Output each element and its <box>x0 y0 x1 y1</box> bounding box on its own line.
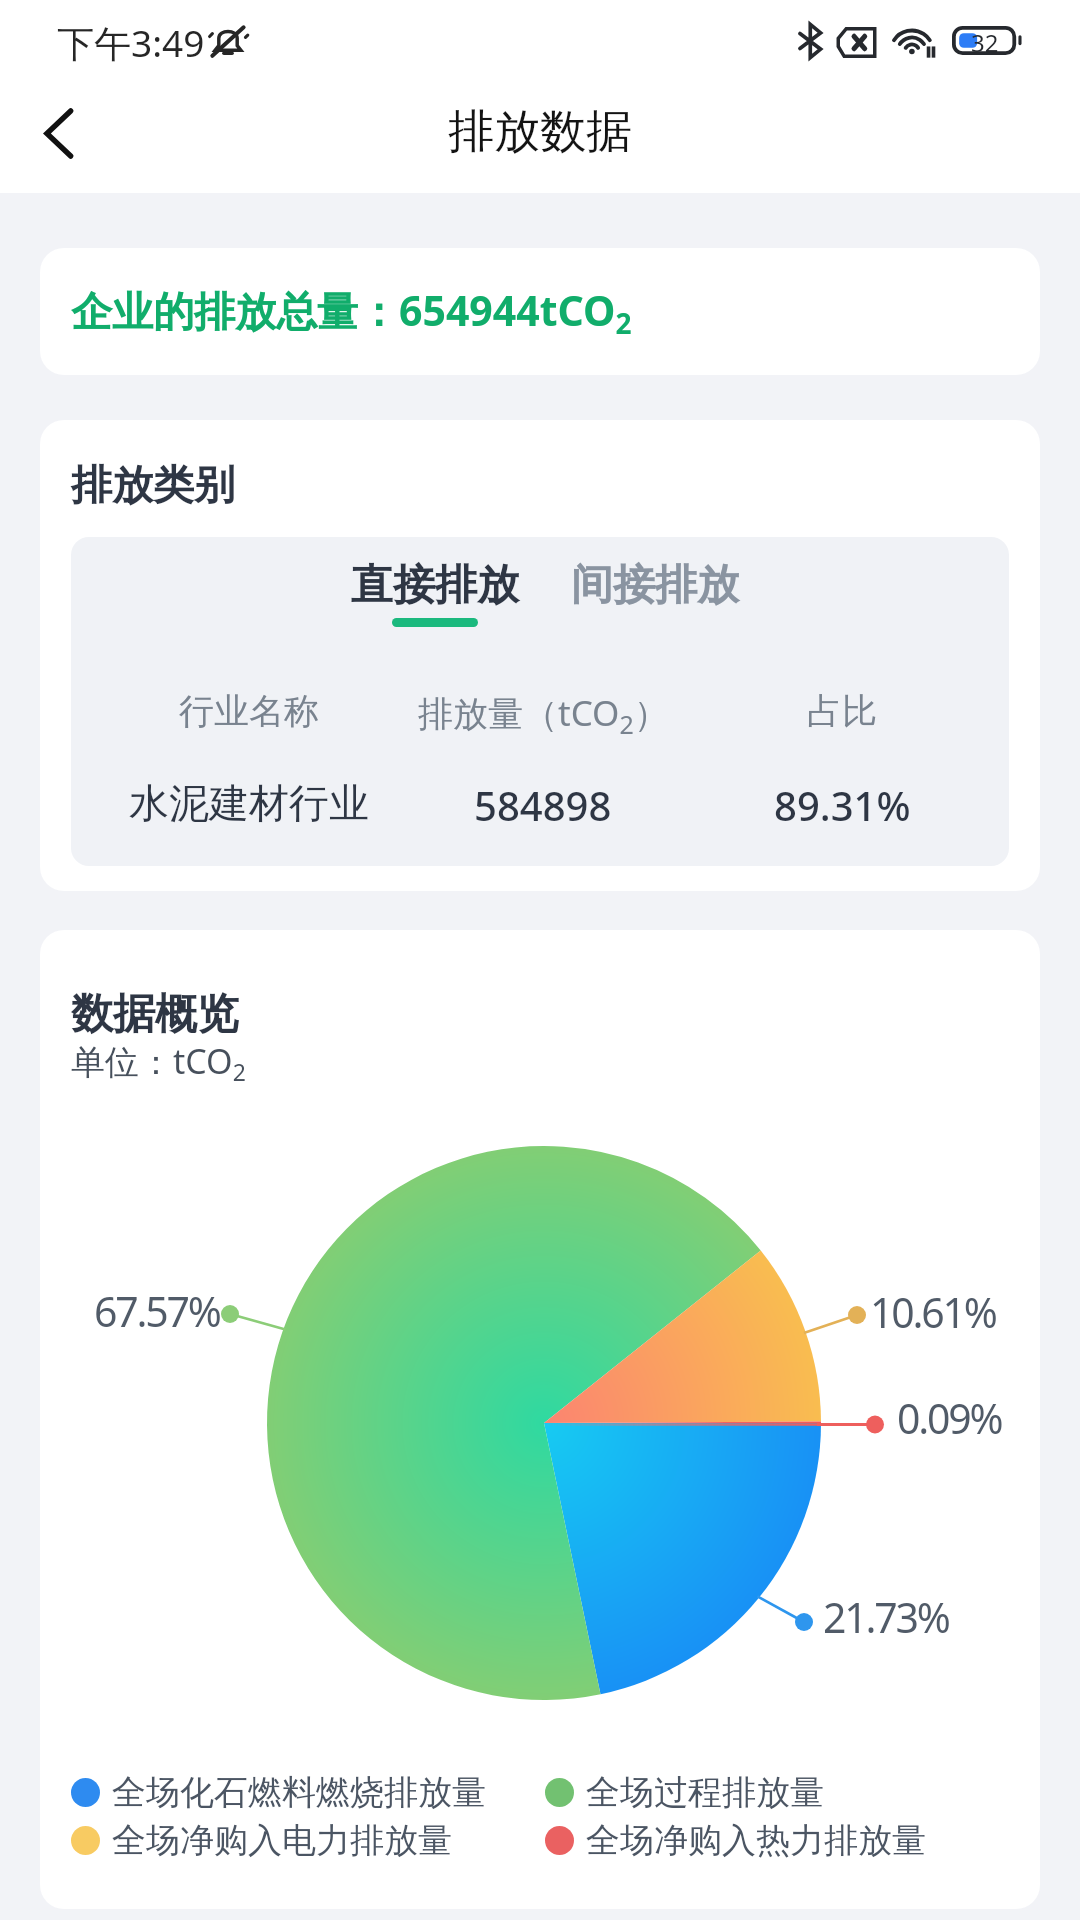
staticText: 数据概览 <box>71 988 239 1041</box>
button[interactable]: 全场化石燃料燃烧排放量 <box>71 1768 545 1816</box>
staticText: 67.57% <box>94 1283 220 1339</box>
button[interactable]: 直接排放 <box>345 559 525 627</box>
staticText: 0.09% <box>897 1390 1002 1446</box>
staticText: 行业名称 <box>179 689 319 733</box>
staticText: 企业的排放总量：654944tCO2 <box>71 282 632 342</box>
button[interactable]: 全场净购入热力排放量 <box>545 1816 1020 1864</box>
staticText: 584898 <box>474 778 612 828</box>
staticText: 全场净购入电力排放量 <box>112 1819 452 1862</box>
button[interactable]: Back <box>15 90 101 176</box>
staticText: 直接排放 <box>351 559 519 612</box>
staticText: 排放量（tCO2） <box>418 689 669 741</box>
button[interactable]: 全场净购入电力排放量 <box>71 1816 545 1864</box>
staticText: 89.31% <box>774 778 911 828</box>
staticText: 32 <box>971 26 999 55</box>
staticText: 下午3:49 <box>57 17 205 68</box>
staticText: 单位：tCO2 <box>71 1038 246 1088</box>
staticText: 占比 <box>807 689 877 733</box>
staticText: 排放数据 <box>448 103 632 161</box>
button[interactable]: 全场过程排放量 <box>545 1768 1020 1816</box>
staticText: 水泥建材行业 <box>129 778 369 828</box>
staticText: 间接排放 <box>571 559 739 612</box>
staticText: 全场化石燃料燃烧排放量 <box>112 1771 486 1814</box>
button[interactable]: 间接排放 <box>565 559 745 627</box>
staticText: 全场净购入热力排放量 <box>586 1819 926 1862</box>
staticText: 排放类别 <box>71 460 235 512</box>
staticText: 10.61% <box>870 1284 996 1340</box>
staticText: 21.73% <box>823 1589 949 1645</box>
staticText: 全场过程排放量 <box>586 1771 824 1814</box>
